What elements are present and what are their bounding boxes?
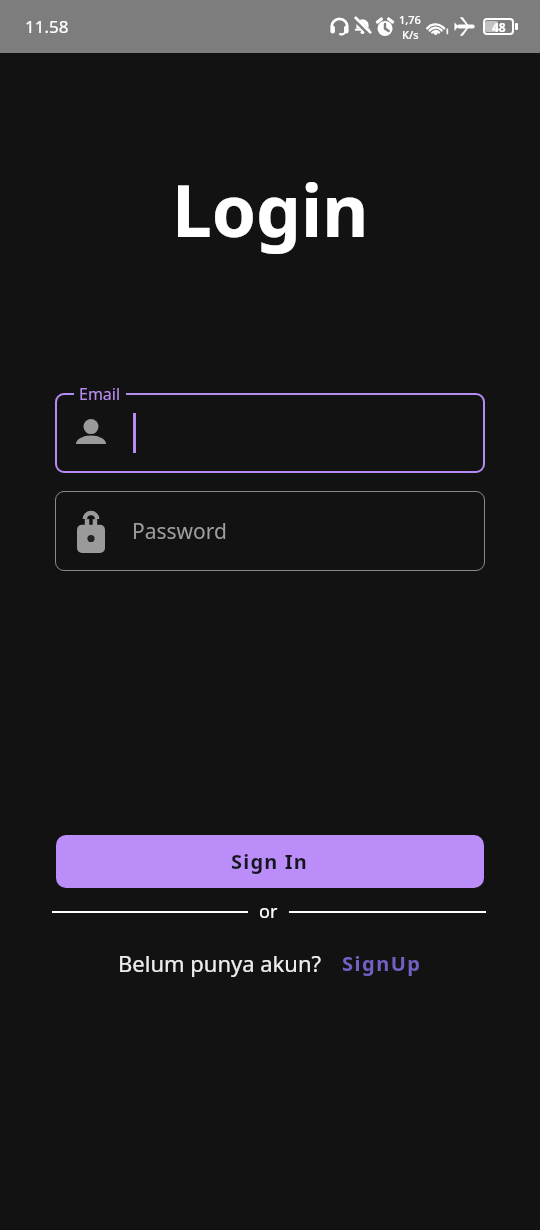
button[interactable]: Sign In [56, 835, 484, 888]
staticText: 1,76 [399, 12, 421, 27]
staticText: Belum punya akun? [118, 948, 322, 978]
staticText: Login [172, 161, 369, 258]
button[interactable]: SignUp [342, 950, 422, 977]
staticText: Email [79, 383, 121, 405]
button[interactable]: Password [55, 491, 485, 571]
staticText: K/s [402, 27, 419, 42]
staticText: 11.58 [25, 15, 69, 38]
staticText: or [259, 899, 278, 924]
staticText: 48 [492, 19, 506, 35]
staticText: Password [132, 517, 227, 546]
staticText: Sign In [231, 848, 309, 875]
button[interactable] [55, 393, 485, 473]
